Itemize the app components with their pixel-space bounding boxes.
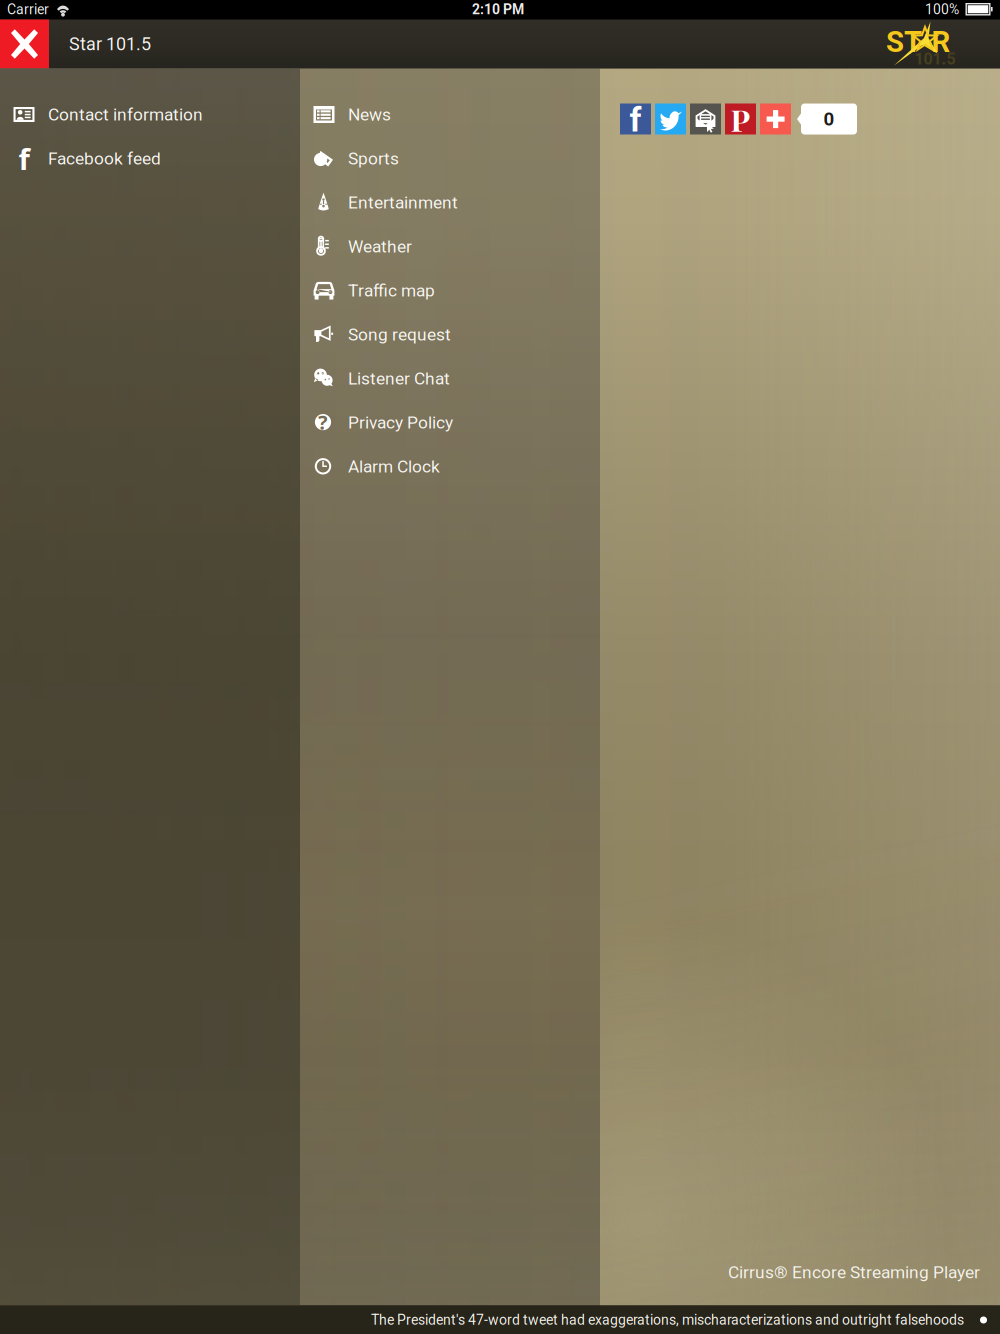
- button[interactable]: Alarm Clock: [300, 444, 600, 488]
- staticText: f: [18, 139, 29, 178]
- staticText: Song request: [348, 324, 451, 345]
- staticText: 2:10 PM: [472, 1, 524, 18]
- button[interactable]: ?: [300, 400, 600, 444]
- button[interactable]: 0 shares: [797, 103, 857, 134]
- button[interactable]: Sports: [300, 136, 600, 180]
- staticText: ST: [886, 25, 922, 59]
- staticText: Traffic map: [348, 280, 435, 301]
- button[interactable]: Song request: [300, 312, 600, 356]
- button[interactable]: Traffic map: [300, 268, 600, 312]
- button[interactable]: Share by email: [690, 103, 721, 134]
- staticText: Carrier: [7, 1, 49, 18]
- staticText: News: [348, 104, 391, 125]
- staticText: 101.5: [914, 50, 955, 68]
- staticText: Weather: [348, 236, 412, 257]
- staticText: Privacy Policy: [348, 412, 453, 433]
- button[interactable]: Weather: [300, 224, 600, 268]
- staticText: 0: [823, 108, 834, 130]
- button[interactable]: News: [300, 92, 600, 136]
- button[interactable]: Close menu: [0, 19, 49, 68]
- staticText: Contact information: [48, 104, 203, 125]
- button[interactable]: f: [0, 136, 300, 180]
- staticText: f: [629, 100, 641, 140]
- staticText: Facebook feed: [48, 148, 161, 169]
- staticText: R: [931, 25, 950, 59]
- staticText: Sports: [348, 148, 399, 169]
- button[interactable]: Listener Chat: [300, 356, 600, 400]
- staticText: The President's 47-word tweet had exagge…: [371, 1312, 964, 1328]
- button[interactable]: Contact information: [0, 92, 300, 136]
- staticText: Alarm Clock: [348, 456, 440, 477]
- staticText: Star 101.5: [69, 33, 151, 55]
- button[interactable]: More sharing options: [760, 103, 791, 134]
- staticText: ?: [318, 409, 328, 435]
- button[interactable]: Share on Facebook: [620, 103, 651, 134]
- staticText: Listener Chat: [348, 368, 450, 389]
- button[interactable]: Share on Pinterest: [725, 103, 756, 134]
- staticText: Cirrus® Encore Streaming Player: [728, 1262, 980, 1282]
- staticText: P: [730, 99, 750, 139]
- staticText: Entertainment: [348, 192, 458, 213]
- button[interactable]: Share on Twitter: [655, 103, 686, 134]
- button[interactable]: Entertainment: [300, 180, 600, 224]
- staticText: 100%: [925, 1, 959, 18]
